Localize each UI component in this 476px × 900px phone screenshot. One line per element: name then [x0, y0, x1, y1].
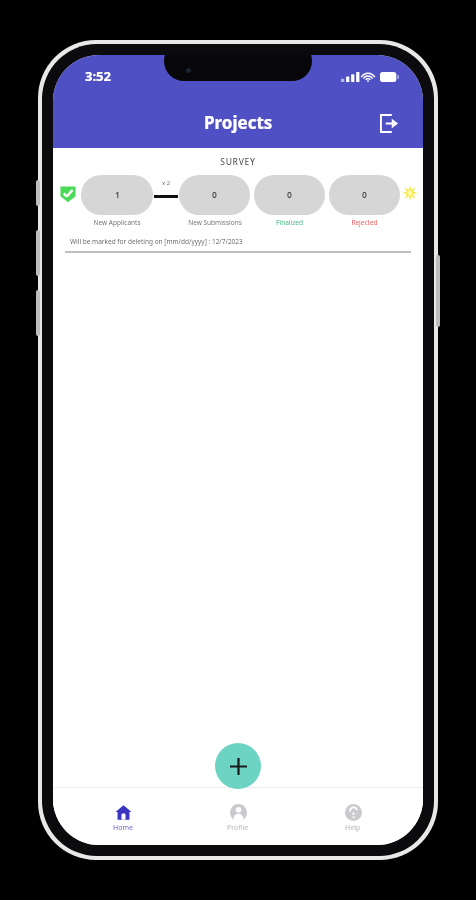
button[interactable]: Approved [59, 185, 77, 203]
button[interactable]: Add [215, 743, 261, 789]
staticText: SURVEY [53, 156, 423, 168]
staticText: x 2 [162, 179, 171, 187]
button[interactable]: Profile [193, 804, 283, 833]
staticText: Will be marked for deleting on [mm/dd/yy… [70, 237, 243, 246]
button[interactable]: Help [308, 804, 398, 833]
staticText: 3:52 [85, 67, 111, 85]
button[interactable]: Logout [373, 107, 405, 139]
staticText: Home [113, 823, 133, 833]
staticText: 0 [287, 189, 292, 201]
button[interactable]: 0 [254, 175, 325, 227]
staticText: 0 [362, 189, 367, 201]
staticText: 1 [115, 189, 120, 201]
button[interactable]: 0 [179, 175, 250, 227]
staticText: Help [345, 823, 361, 833]
staticText: Rejected [351, 218, 378, 227]
button[interactable]: 1 [81, 175, 153, 227]
staticText: Finalized [276, 218, 303, 227]
button[interactable]: Home [78, 804, 168, 833]
staticText: New Submissions [188, 218, 242, 227]
button[interactable]: Notification [402, 185, 418, 201]
staticText: Projects [204, 111, 273, 134]
staticText: Profile [227, 823, 249, 833]
button[interactable]: 0 [329, 175, 400, 227]
staticText: New Applicants [93, 218, 141, 227]
staticText: 0 [212, 189, 217, 201]
